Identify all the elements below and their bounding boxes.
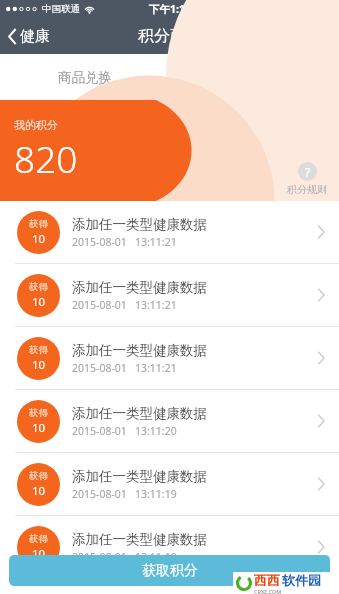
button[interactable]: 我的积分 [169,54,339,100]
staticText: 软件园 [282,572,321,588]
staticText: 13:11:18 [135,550,177,564]
staticText: 10 [32,231,46,247]
staticText: 10 [32,294,46,310]
staticText: 西西 [254,572,280,588]
button[interactable]: 商品兑换 [0,54,169,100]
staticText: 13:11:21 [135,235,177,249]
staticText: 添加任一类型健康数据 [72,342,207,359]
staticText: 13:11:21 [135,361,177,375]
staticText: 积分商城 [138,26,202,46]
other: 积分规则 [298,162,317,181]
button[interactable]: 获取积分 [9,555,330,586]
staticText: 添加任一类型健康数据 [72,216,207,233]
staticText: 2015-08-01 [72,550,127,564]
staticText: 商品兑换 [58,69,112,86]
staticText: 获得 [29,470,48,482]
staticText: 添加任一类型健康数据 [72,468,207,485]
staticText: 获得 [29,533,48,545]
staticText: 2015-08-01 [72,235,127,249]
button[interactable]: 获得 [0,453,339,515]
button[interactable]: 获得 [0,327,339,389]
staticText: 13:11:19 [135,487,177,501]
button[interactable]: 积分规则 [287,162,327,196]
staticText: CRXZ.COM [254,588,282,594]
staticText: 2015-08-01 [72,298,127,312]
button[interactable]: 健康 [0,23,60,50]
staticText: 下午1:17 [149,2,191,16]
button[interactable]: 获得 [0,264,339,326]
staticText: ? [305,164,311,180]
staticText: 10 [32,357,46,373]
staticText: 中国联通 [42,3,80,15]
staticText: 获得 [29,407,48,419]
staticText: 添加任一类型健康数据 [72,279,207,296]
staticText: 10 [32,483,46,499]
staticText: 我的积分 [14,118,58,132]
staticText: 健康 [20,27,50,46]
staticText: 13:11:21 [135,298,177,312]
staticText: 获得 [29,344,48,356]
staticText: 获得 [29,281,48,293]
staticText: 获取积分 [142,562,198,580]
staticText: 2015-08-01 [72,487,127,501]
staticText: 13:11:20 [135,424,177,438]
staticText: 10 [32,546,46,562]
button[interactable]: 获得 [0,516,339,578]
staticText: 2015-08-01 [72,424,127,438]
staticText: 10 [32,420,46,436]
staticText: 积分规则 [287,183,327,196]
button[interactable]: 获得 [0,201,339,263]
staticText: 添加任一类型健康数据 [72,531,207,548]
button[interactable]: 获得 [0,390,339,452]
staticText: 820 [14,133,78,183]
staticText: 获得 [29,218,48,230]
staticText: 2015-08-01 [72,361,127,375]
staticText: 添加任一类型健康数据 [72,405,207,422]
